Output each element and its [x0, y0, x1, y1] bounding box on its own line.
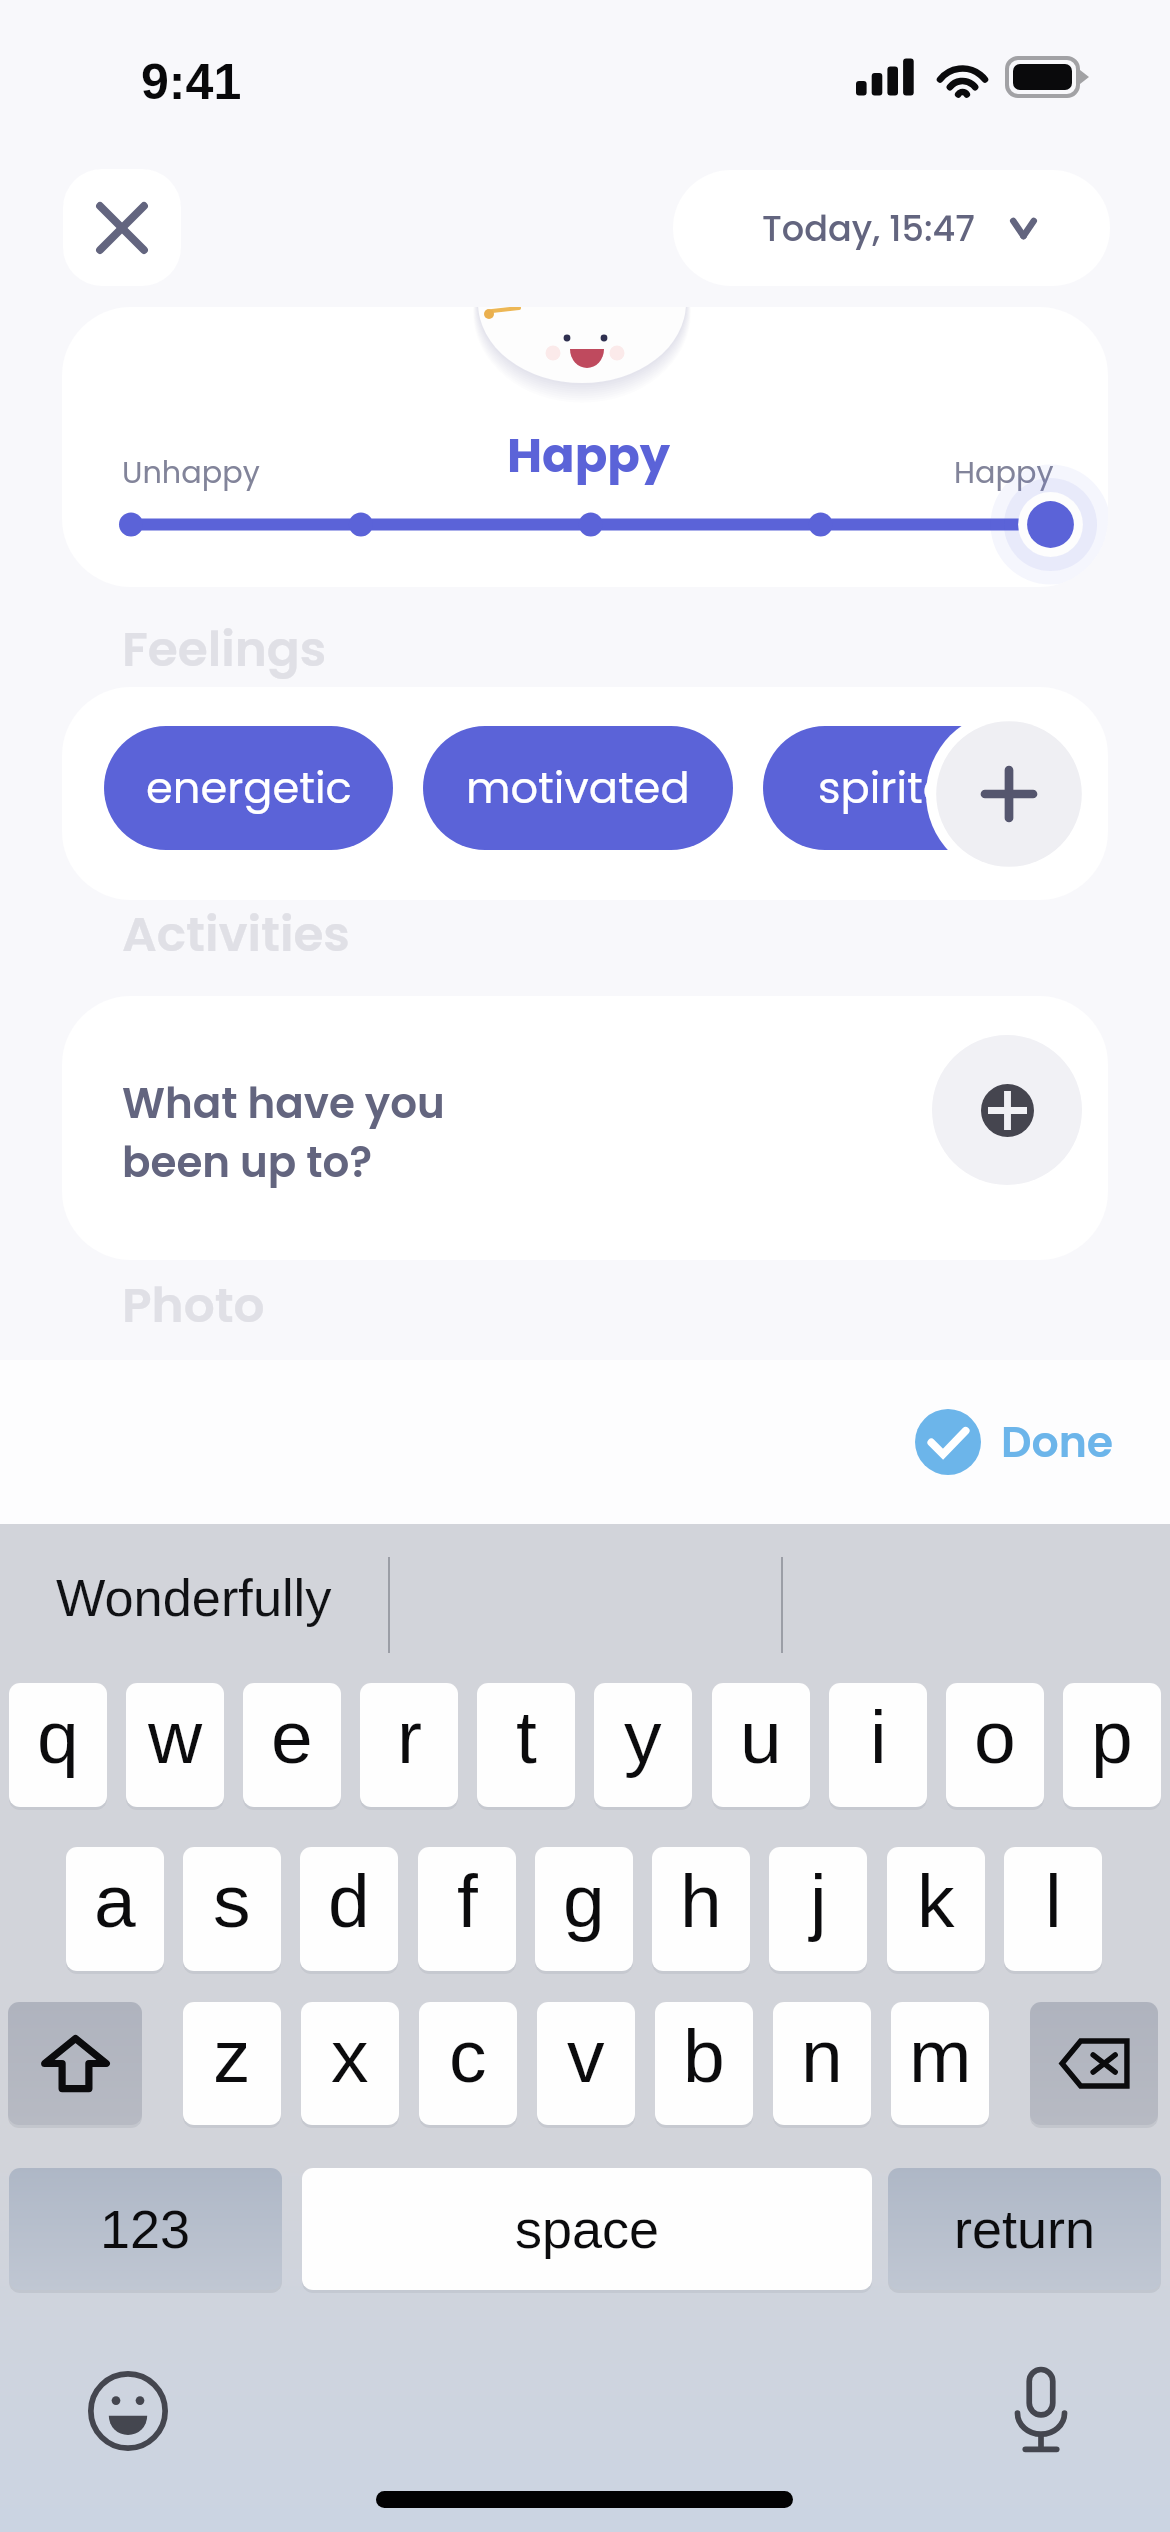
button[interactable]: v [537, 2002, 635, 2125]
button[interactable]: Close [63, 169, 181, 286]
button[interactable]: j [769, 1847, 867, 1971]
button[interactable]: Done [897, 1360, 1132, 1524]
staticText: 123 [100, 2199, 191, 2259]
staticText: 9:41 [141, 54, 242, 110]
button[interactable]: w [126, 1683, 224, 1807]
staticText: space [515, 2199, 660, 2259]
staticText: n [801, 2014, 843, 2098]
staticText: u [740, 1695, 782, 1779]
button[interactable]: g [535, 1847, 633, 1971]
button[interactable]: y [594, 1683, 692, 1807]
staticText: b [683, 2014, 725, 2098]
staticText: y [624, 1695, 662, 1779]
button[interactable]: energetic [104, 726, 393, 850]
button[interactable]: c [419, 2002, 517, 2125]
staticText: p [1091, 1695, 1133, 1779]
staticText: Happy [507, 422, 671, 489]
button[interactable]: b [655, 2002, 753, 2125]
staticText: Photo [122, 1271, 265, 1339]
button[interactable]: k [887, 1847, 985, 1971]
staticText: Activities [122, 900, 350, 968]
button[interactable]: Today, 15:47 [673, 170, 1110, 286]
button[interactable]: o [946, 1683, 1044, 1807]
button[interactable]: e [243, 1683, 341, 1807]
button[interactable]: Backspace [1030, 2002, 1158, 2125]
staticText: m [909, 2014, 972, 2098]
staticText: Happy [954, 451, 1054, 493]
button[interactable]: Add activity [932, 1035, 1082, 1185]
staticText: a [94, 1859, 136, 1943]
staticText: d [328, 1859, 370, 1943]
button[interactable]: 123 [9, 2168, 282, 2290]
button[interactable]: Shift [8, 2002, 142, 2125]
staticText: w [148, 1695, 203, 1779]
staticText: h [680, 1859, 722, 1943]
button[interactable]: t [477, 1683, 575, 1807]
button[interactable]: Add feeling [926, 711, 1092, 877]
staticText: energetic [146, 758, 352, 818]
staticText: o [974, 1695, 1016, 1779]
staticText: x [331, 2014, 369, 2098]
button[interactable]: p [1063, 1683, 1161, 1807]
button[interactable]: Emoji keyboard [88, 2371, 168, 2451]
button[interactable]: return [888, 2168, 1161, 2290]
button[interactable]: f [418, 1847, 516, 1971]
button[interactable]: z [183, 2002, 281, 2125]
button[interactable]: space [302, 2168, 872, 2290]
button[interactable]: u [712, 1683, 810, 1807]
staticText: s [213, 1859, 251, 1943]
staticText: j [810, 1859, 827, 1943]
staticText: g [563, 1859, 605, 1943]
button[interactable]: r [360, 1683, 458, 1807]
button[interactable]: l [1004, 1847, 1102, 1971]
staticText: Today, 15:47 [762, 204, 975, 253]
button[interactable]: i [829, 1683, 927, 1807]
staticText: c [449, 2014, 487, 2098]
staticText: r [397, 1695, 422, 1779]
staticText: t [516, 1695, 537, 1779]
staticText: i [870, 1695, 887, 1779]
staticText: motivated [466, 758, 690, 818]
staticText: l [1045, 1859, 1062, 1943]
staticText: e [271, 1695, 313, 1779]
staticText: f [457, 1859, 478, 1943]
button[interactable]: n [773, 2002, 871, 2125]
button[interactable]: Voice input [1013, 2367, 1069, 2451]
staticText: What have you been up to? [122, 1074, 445, 1192]
button[interactable]: q [9, 1683, 107, 1807]
button[interactable]: d [300, 1847, 398, 1971]
button[interactable]: motivated [423, 726, 733, 850]
button[interactable]: spirited [763, 726, 1033, 850]
button[interactable]: h [652, 1847, 750, 1971]
staticText: q [37, 1695, 79, 1779]
staticText: Wonderfully [56, 1569, 332, 1627]
staticText: k [917, 1859, 955, 1943]
staticText: Unhappy [122, 451, 260, 493]
staticText: return [954, 2199, 1096, 2259]
button[interactable]: a [66, 1847, 164, 1971]
staticText: spirited [818, 758, 979, 818]
staticText: v [567, 2014, 605, 2098]
button[interactable]: x [301, 2002, 399, 2125]
button[interactable]: m [891, 2002, 989, 2125]
staticText: Done [1001, 1412, 1114, 1472]
button[interactable]: s [183, 1847, 281, 1971]
staticText: Feelings [122, 615, 327, 683]
staticText: z [213, 2014, 251, 2098]
